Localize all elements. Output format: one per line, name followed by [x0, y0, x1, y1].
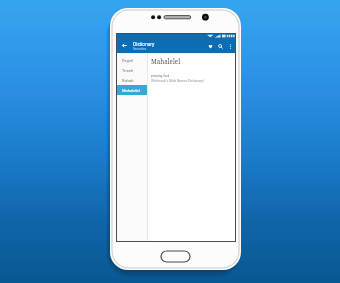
staticText: Pagiel: [122, 58, 134, 63]
button[interactable]: Search: [215, 39, 225, 53]
staticText: Dictionary: [133, 41, 155, 47]
staticText: Tirzah: [122, 68, 134, 73]
staticText: praising God: [151, 74, 170, 78]
staticText: Rahab: [122, 78, 134, 83]
button[interactable]: Pagiel: [117, 55, 147, 65]
button[interactable]: Tirzah: [117, 65, 147, 75]
button[interactable]: Rahab: [117, 75, 147, 85]
button[interactable]: Favorite: [205, 39, 215, 53]
staticText: (Hitchcock's Bible Names Dictionary): [151, 79, 204, 83]
button[interactable]: Mahalelel: [117, 85, 147, 95]
staticText: Mahalelel: [151, 57, 181, 65]
button[interactable]: More options: [225, 39, 235, 53]
button[interactable]: Dictionary: [133, 41, 155, 51]
button[interactable]: Back: [120, 38, 129, 52]
staticText: Favorites: [133, 47, 147, 51]
staticText: Mahalelel: [122, 88, 140, 93]
